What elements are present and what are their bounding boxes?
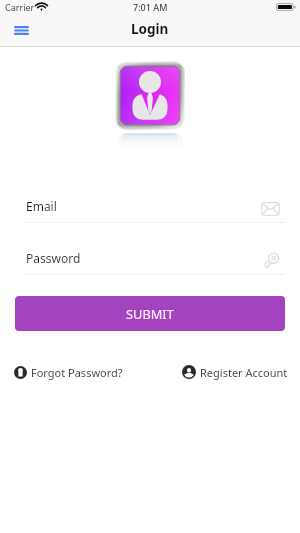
button[interactable]: Forgot Password? [14, 364, 123, 380]
staticText: Forgot Password? [31, 365, 123, 380]
staticText: Email [26, 198, 57, 214]
button[interactable]: SUBMIT [15, 296, 285, 331]
staticText: Login [131, 20, 169, 38]
button[interactable]: Register Account [182, 364, 288, 380]
staticText: Carrier [5, 1, 35, 13]
staticText: Password [26, 250, 81, 266]
button[interactable]: Open navigation menu [0, 14, 41, 46]
staticText: 7:01 AM [133, 1, 168, 13]
staticText: SUBMIT [126, 305, 174, 322]
staticText: Register Account [200, 365, 288, 380]
